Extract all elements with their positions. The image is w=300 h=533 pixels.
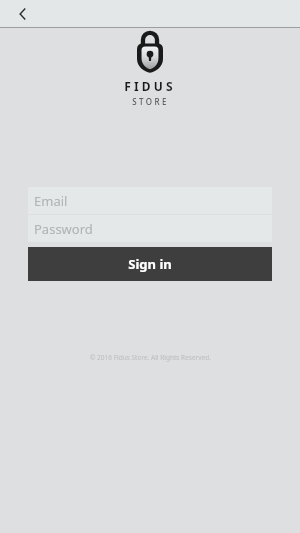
button[interactable]: Sign in [28, 247, 272, 281]
staticText: © 2016 Fidus Store. All Rights Reserved. [90, 353, 211, 362]
staticText: FIDUS [124, 78, 176, 94]
button[interactable]: Password [28, 215, 272, 242]
staticText: Sign in [128, 255, 172, 273]
button[interactable]: Back [6, 0, 40, 28]
staticText: STORE [132, 96, 169, 107]
staticText: Email [34, 192, 68, 210]
button[interactable]: Email [28, 187, 272, 214]
staticText: Password [34, 220, 93, 238]
